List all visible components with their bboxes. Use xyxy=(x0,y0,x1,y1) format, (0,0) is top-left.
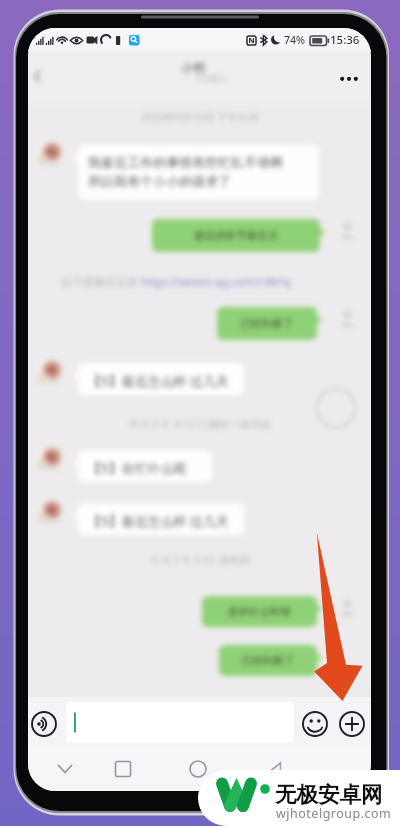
button[interactable]: More functions xyxy=(339,711,365,737)
button[interactable]: Contact avatar xyxy=(38,142,61,166)
button[interactable]: 已经到家了 xyxy=(219,645,317,676)
staticText: 最近的快节奏生活 xyxy=(194,229,278,242)
button[interactable]: 已经到家了 xyxy=(217,307,317,340)
staticText: 已经到家了 xyxy=(241,317,294,330)
staticText: 正在输入 xyxy=(195,73,227,83)
staticText: 是的什么时候 xyxy=(228,605,291,618)
button[interactable]: Emoji xyxy=(302,711,328,737)
button[interactable]: Hide keyboard xyxy=(50,754,80,784)
button[interactable]: 最近的快节奏生活 xyxy=(152,219,320,252)
button[interactable]: 【5】最近怎么样 过几天 xyxy=(78,503,244,535)
button[interactable]: Recent apps xyxy=(108,754,138,784)
staticText: 小明 xyxy=(181,60,205,75)
button[interactable]: 【5】最近怎么样 过几天 xyxy=(78,363,244,395)
staticText: 昨天下午 4:12 已撤回一条消息 xyxy=(129,417,271,431)
staticText: 我最近工作的事情有些忙乱不堪啊 xyxy=(88,154,283,170)
button[interactable]: 我最近工作的事情有些忙乱不堪啊 xyxy=(78,145,319,200)
button[interactable]: Voice input xyxy=(31,711,57,737)
staticText: https://weixin.qq.com/r/8kTq xyxy=(141,274,291,289)
staticText: 【5】最近怎么样 过几天 xyxy=(88,372,229,390)
button[interactable]: Contact avatar xyxy=(38,360,61,384)
button[interactable]: Back xyxy=(28,62,52,92)
staticText: 【5】在忙什么呢 xyxy=(88,459,187,477)
button[interactable]: Home xyxy=(183,754,213,784)
staticText: wjhotelgroup.com xyxy=(276,805,392,822)
button[interactable]: 【5】在忙什么呢 xyxy=(78,450,212,482)
staticText: 无极安卓网 xyxy=(275,781,383,808)
button[interactable]: My avatar xyxy=(338,308,357,327)
button[interactable]: Back xyxy=(261,754,291,784)
button[interactable]: My avatar xyxy=(338,597,357,616)
button[interactable]: Message input xyxy=(66,702,294,743)
staticText: 【5】最近怎么样 过几天 xyxy=(88,512,229,530)
staticText: 所以我有个小小的请求了 xyxy=(88,173,231,189)
staticText: 以下是聊天记录 xyxy=(61,274,141,289)
staticText: 2022年9月15日 下午3:28 xyxy=(140,110,259,124)
button[interactable]: My avatar xyxy=(338,220,357,239)
staticText: 15:36 xyxy=(330,32,360,48)
staticText: 74% xyxy=(284,33,305,47)
button[interactable]: More options xyxy=(331,64,363,96)
button[interactable]: Contact avatar xyxy=(38,447,61,471)
staticText: 已经到家了 xyxy=(242,654,295,667)
button[interactable]: Contact avatar xyxy=(38,500,61,524)
staticText: 今天下午 5:03 星期四 xyxy=(150,553,250,567)
button[interactable]: Loading xyxy=(314,386,358,430)
button[interactable]: 是的什么时候 xyxy=(202,596,317,627)
